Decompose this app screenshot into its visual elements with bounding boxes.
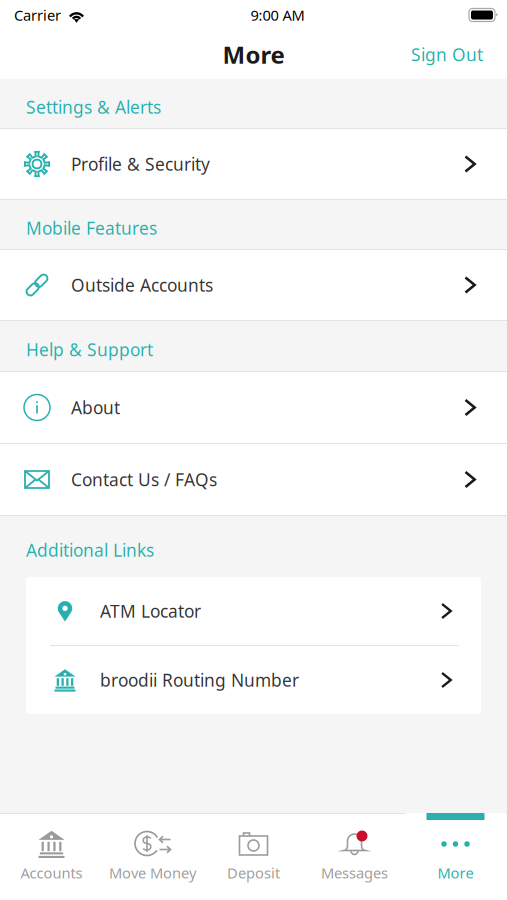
staticText: broodii Routing Number (100, 668, 299, 691)
staticText: Messages (321, 863, 388, 882)
staticText: Mobile Features (26, 216, 157, 239)
button[interactable]: Move Money (102, 813, 203, 900)
button[interactable]: More (405, 813, 506, 900)
button[interactable]: ATM Locator (26, 577, 481, 645)
button[interactable]: Outside Accounts (0, 250, 507, 320)
button[interactable]: Contact Us / FAQs (0, 444, 507, 515)
button[interactable]: Accounts (1, 813, 102, 900)
button[interactable]: broodii Routing Number (26, 646, 481, 714)
staticText: About (71, 396, 120, 419)
button[interactable]: Sign Out (411, 43, 507, 66)
staticText: More (222, 39, 284, 70)
staticText: Settings & Alerts (26, 95, 161, 118)
button[interactable]: About (0, 372, 507, 443)
staticText: Carrier (14, 5, 61, 25)
staticText: More (437, 863, 473, 882)
staticText: Contact Us / FAQs (71, 468, 217, 491)
staticText: Additional Links (26, 538, 154, 561)
staticText: Outside Accounts (71, 273, 213, 296)
button[interactable]: Messages (304, 813, 405, 900)
button[interactable]: Deposit (203, 813, 304, 900)
staticText: Sign Out (411, 43, 483, 66)
staticText: 9:00 AM (250, 5, 304, 25)
staticText: Accounts (20, 863, 82, 882)
staticText: Help & Support (26, 338, 153, 361)
staticText: Deposit (227, 863, 280, 882)
staticText: Profile & Security (71, 152, 210, 175)
staticText: ATM Locator (100, 599, 201, 622)
staticText: Move Money (109, 863, 196, 882)
button[interactable]: Profile & Security (0, 129, 507, 199)
